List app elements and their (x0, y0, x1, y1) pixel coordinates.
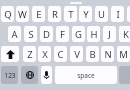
button[interactable]: D (40, 26, 53, 42)
button[interactable]: V (70, 46, 83, 62)
staticText: E (36, 8, 42, 21)
button[interactable]: T (64, 6, 77, 22)
staticText: Q (4, 8, 12, 21)
staticText: G (75, 28, 82, 41)
staticText: W (18, 8, 27, 21)
staticText: H (90, 28, 98, 41)
button[interactable]: Q (1, 6, 14, 22)
button[interactable]: Z (23, 46, 36, 62)
button[interactable]: M (117, 46, 130, 62)
button[interactable]: U (95, 6, 108, 22)
button[interactable]: Change keyboard (21, 66, 38, 84)
button[interactable]: A (8, 26, 21, 42)
staticText: U (98, 8, 105, 21)
button[interactable]: J (103, 26, 116, 42)
button[interactable]: K (119, 26, 130, 42)
button[interactable]: O (127, 6, 130, 22)
staticText: M (119, 48, 128, 61)
staticText: T (68, 8, 74, 21)
button[interactable]: H (87, 26, 100, 42)
staticText: Y (83, 8, 89, 21)
button[interactable]: X (38, 46, 51, 62)
button[interactable]: I (111, 6, 124, 22)
staticText: B (89, 48, 96, 61)
staticText: Z (27, 48, 33, 61)
staticText: F (60, 28, 65, 41)
staticText: space (77, 71, 95, 80)
button[interactable]: C (54, 46, 67, 62)
staticText: V (74, 48, 80, 61)
button[interactable]: W (16, 6, 29, 22)
staticText: K (123, 28, 129, 41)
staticText: D (43, 28, 50, 41)
button[interactable]: 123 (1, 66, 18, 84)
staticText: I (116, 8, 120, 21)
staticText: C (57, 48, 64, 61)
staticText: X (42, 48, 48, 61)
button[interactable]: G (72, 26, 85, 42)
button[interactable]: Shift (1, 46, 19, 62)
staticText: R (52, 8, 58, 21)
button[interactable]: Voice input (41, 66, 52, 84)
button[interactable]: F (56, 26, 69, 42)
staticText: J (108, 28, 111, 41)
button[interactable]: B (86, 46, 99, 62)
button[interactable]: E (32, 6, 45, 22)
button[interactable]: S (24, 26, 37, 42)
button[interactable]: N (101, 46, 114, 62)
staticText: 123 (4, 71, 16, 80)
staticText: A (11, 28, 18, 41)
button[interactable]: space (55, 66, 117, 84)
staticText: S (28, 28, 34, 41)
button[interactable]: R (48, 6, 61, 22)
staticText: N (104, 48, 112, 61)
button[interactable]: Y (79, 6, 92, 22)
